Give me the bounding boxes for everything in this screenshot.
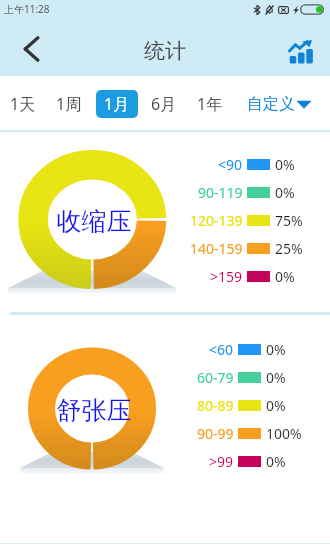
staticText: 0% (275, 267, 295, 286)
staticText: 90-119 (198, 183, 243, 202)
staticText: 1天 (10, 93, 36, 115)
staticText: 自定义 (247, 94, 295, 114)
staticText: 0% (275, 183, 295, 202)
button[interactable]: 6月 (143, 90, 185, 118)
staticText: 1月 (104, 93, 130, 115)
staticText: 140-159 (190, 239, 243, 258)
staticText: 25% (275, 239, 303, 258)
staticText: 0% (266, 452, 286, 471)
button[interactable]: Back (7, 25, 55, 73)
staticText: 0% (266, 368, 286, 387)
staticText: 90-99 (197, 424, 234, 443)
staticText: 1周 (56, 93, 82, 115)
staticText: 0% (275, 155, 295, 174)
staticText: 收缩压 (34, 206, 154, 237)
staticText: 上午11:28 (4, 2, 50, 16)
staticText: 舒张压 (34, 395, 154, 426)
staticText: <90 (218, 155, 243, 174)
button[interactable]: 自定义 (247, 90, 327, 118)
staticText: 120-139 (190, 211, 243, 230)
staticText: 6月 (151, 93, 177, 115)
staticText: >99 (209, 452, 234, 471)
staticText: 0% (266, 340, 286, 359)
staticText: 80-89 (197, 396, 234, 415)
staticText: 60-79 (197, 368, 234, 387)
staticText: 统计 (144, 38, 186, 64)
button[interactable]: Statistics chart (278, 30, 322, 74)
button[interactable]: 1年 (189, 90, 231, 118)
staticText: 100% (266, 424, 302, 443)
staticText: 0% (266, 396, 286, 415)
staticText: 1年 (197, 93, 223, 115)
button[interactable]: 1天 (2, 90, 44, 118)
staticText: 75% (275, 211, 303, 230)
staticText: >159 (210, 267, 243, 286)
button[interactable]: 1周 (48, 90, 90, 118)
button[interactable]: 1月 (96, 90, 138, 118)
staticText: <60 (209, 340, 234, 359)
